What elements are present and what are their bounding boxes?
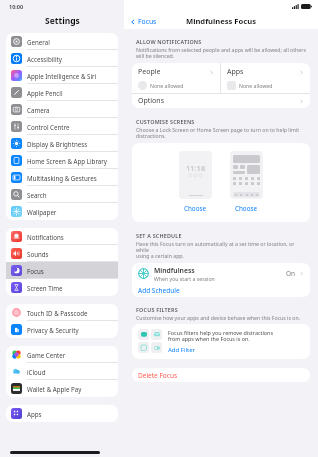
button[interactable]: Apps [6,405,118,422]
staticText: Game Center [27,351,66,359]
button[interactable]: Add Schedule [132,284,310,297]
staticText: Apple Pencil [27,89,63,97]
button[interactable]: Sounds [6,245,118,262]
button[interactable]: 11:18 [179,151,212,199]
staticText: Have this Focus turn on automatically at… [136,240,306,260]
staticText: Focus [138,17,157,26]
staticText: Settings [45,15,80,27]
staticText: Multitasking & Gestures [27,174,97,182]
button[interactable]: Notifications [6,228,118,245]
staticText: On [286,269,296,278]
button[interactable]: Choose [231,203,262,214]
staticText: Mindfulness Focus [186,16,256,26]
staticText: Apple Intelligence & Siri [27,72,97,80]
button[interactable] [230,151,263,199]
staticText: ALLOW NOTIFICATIONS [136,38,202,45]
staticText: Touch ID & Passcode [27,309,88,317]
staticText: Choose [184,204,207,213]
staticText: CUSTOMISE SCREENS [136,118,195,125]
staticText: SET A SCHEDULE [136,232,182,239]
staticText: Privacy & Security [27,326,79,334]
button[interactable]: iCloud [6,363,118,380]
button[interactable]: Apple Intelligence & Siri [6,67,118,84]
button[interactable]: Camera [6,101,118,118]
staticText: None allowed [239,82,273,89]
staticText: Control Centre [27,123,70,131]
button[interactable]: Home Screen & App Library [6,152,118,169]
staticText: Screen Time [27,284,63,292]
button[interactable]: Apple Pencil [6,84,118,101]
button[interactable]: General [6,33,118,50]
button[interactable]: Screen Time [6,279,118,296]
button[interactable]: Focus [6,262,118,279]
button[interactable]: Choose [180,203,211,214]
button[interactable]: Focus [130,17,157,26]
staticText: Sounds [27,250,49,258]
button[interactable]: People [132,63,220,93]
staticText: Notifications from selected people and a… [136,46,306,60]
staticText: iCloud [27,368,46,376]
staticText: 10:00 [9,3,24,10]
button[interactable]: Privacy & Security [6,321,118,338]
staticText: Home Screen & App Library [27,157,107,165]
button[interactable]: Add Filter [168,346,196,354]
button[interactable]: Multitasking & Gestures [6,169,118,186]
button[interactable]: Touch ID & Passcode [6,304,118,321]
staticText: Mindfulness [154,266,195,275]
staticText: Accessibility [27,55,62,63]
staticText: People [138,67,161,77]
button[interactable]: Control Centre [6,118,118,135]
staticText: General [27,38,50,46]
staticText: Display & Brightness [27,140,88,148]
button[interactable]: Search [6,186,118,203]
staticText: Focus filters help you remove distractio… [168,329,274,343]
staticText: Delete Focus [138,371,178,380]
staticText: Camera [27,106,50,114]
staticText: Options [138,96,165,106]
button[interactable]: Game Center [6,346,118,363]
staticText: When you start a session [154,275,215,282]
button[interactable]: Accessibility [6,50,118,67]
button[interactable]: Delete Focus [132,368,310,382]
staticText: Add Filter [168,346,196,354]
staticText: 11:18 [186,163,206,173]
staticText: None allowed [150,82,184,89]
staticText: Wallet & Apple Pay [27,385,82,393]
staticText: Search [27,191,47,199]
button[interactable]: Display & Brightness [6,135,118,152]
staticText: Customise how your apps and device behav… [136,314,301,321]
button[interactable]: Wallpaper [6,203,118,220]
button[interactable]: Options [132,94,310,108]
staticText: Focus [27,267,44,275]
staticText: Add Schedule [138,286,180,295]
staticText: Apps [27,410,42,418]
staticText: Notifications [27,233,64,241]
button[interactable]: Wallet & Apple Pay [6,380,118,397]
button[interactable]: Apps [221,63,310,93]
staticText: Wallpaper [27,208,57,216]
staticText: Choose a Lock Screen or Home Screen page… [136,126,300,140]
button[interactable]: Mindfulness [132,263,310,284]
staticText: Apps [227,67,244,77]
staticText: FOCUS FILTERS [136,306,178,313]
staticText: Choose [235,204,258,213]
